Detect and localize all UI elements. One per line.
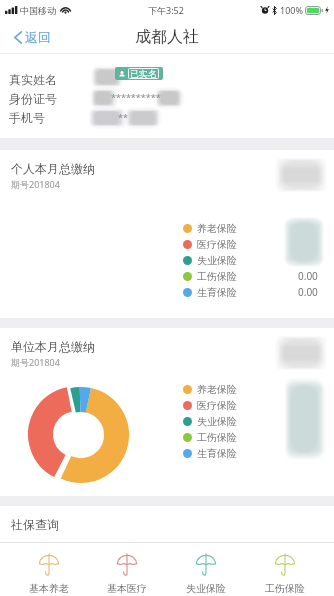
staticText: 手机号: [9, 110, 45, 125]
staticText: 医疗保险: [197, 238, 237, 251]
staticText: 基本养老: [29, 582, 69, 595]
staticText: 身份证号: [9, 91, 57, 106]
staticText: 单位本月总缴纳: [11, 339, 95, 354]
staticText: 0.00: [298, 269, 318, 283]
staticText: 0.00: [298, 285, 318, 299]
staticText: 真实姓名: [9, 72, 57, 87]
staticText: 养老保险: [197, 222, 237, 235]
staticText: 成都人社: [135, 27, 199, 47]
staticText: 失业保险: [186, 582, 226, 595]
staticText: 下午3:52: [148, 4, 184, 16]
staticText: 期号201804: [11, 178, 60, 190]
staticText: 工伤保险: [265, 582, 305, 595]
staticText: 生育保险: [197, 286, 237, 299]
staticText: 失业保险: [197, 254, 237, 267]
staticText: 养老保险: [197, 383, 237, 396]
staticText: 100%: [280, 4, 303, 16]
staticText: 工伤保险: [197, 270, 237, 283]
staticText: **: [118, 111, 128, 123]
staticText: 期号201804: [11, 356, 60, 368]
staticText: 失业保险: [197, 415, 237, 428]
button[interactable]: Basic pension query: [10, 554, 88, 596]
staticText: 个人本月总缴纳: [11, 161, 95, 176]
button[interactable]: Basic medical query: [88, 554, 166, 596]
staticText: 工伤保险: [197, 431, 237, 444]
button[interactable]: Back: [0, 22, 65, 52]
button[interactable]: Work injury insurance query: [245, 554, 324, 596]
staticText: 医疗保险: [197, 399, 237, 412]
staticText: 社保查询: [11, 517, 59, 532]
staticText: 生育保险: [197, 447, 237, 460]
button[interactable]: Unemployment insurance query: [166, 554, 245, 596]
staticText: 已实名: [130, 68, 157, 79]
staticText: 基本医疗: [107, 582, 147, 595]
staticText: **********: [111, 91, 161, 103]
staticText: 中国移动: [20, 5, 56, 16]
staticText: 返回: [25, 29, 51, 45]
